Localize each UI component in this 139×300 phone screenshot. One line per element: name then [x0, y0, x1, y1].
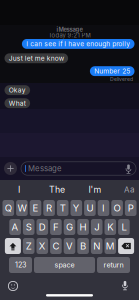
- staticText: Y: [73, 202, 80, 214]
- button[interactable]: S: [23, 219, 34, 235]
- staticText: space: [54, 261, 74, 269]
- staticText: I'm: [88, 184, 101, 195]
- button[interactable]: V: [64, 238, 75, 254]
- button[interactable]: H: [77, 219, 89, 235]
- staticText: O: [114, 202, 121, 214]
- button[interactable]: Y: [70, 200, 82, 216]
- button[interactable]: K: [104, 219, 116, 235]
- button[interactable]: Add attachment: [4, 162, 17, 175]
- staticText: R: [46, 202, 52, 214]
- staticText: The: [49, 184, 65, 195]
- button[interactable]: E: [30, 200, 41, 216]
- staticText: K: [107, 221, 113, 233]
- button[interactable]: J: [91, 219, 102, 235]
- button[interactable]: B: [77, 238, 89, 254]
- staticText: C: [52, 240, 59, 252]
- staticText: B: [80, 240, 86, 252]
- staticText: J: [94, 221, 99, 233]
- button[interactable]: I'm: [76, 181, 114, 198]
- staticText: L: [121, 221, 126, 233]
- staticText: Just let me know: [9, 54, 64, 62]
- button[interactable]: L: [118, 219, 130, 235]
- button[interactable]: N: [91, 238, 102, 254]
- staticText: S: [26, 221, 32, 233]
- staticText: H: [80, 221, 87, 233]
- button[interactable]: R: [43, 200, 55, 216]
- staticText: F: [53, 221, 59, 233]
- button[interactable]: T: [57, 200, 68, 216]
- staticText: G: [66, 221, 73, 233]
- staticText: I: [18, 184, 20, 195]
- staticText: 123: [15, 261, 26, 269]
- staticText: Number 25: [94, 67, 130, 75]
- staticText: iMessage: [56, 26, 82, 33]
- staticText: P: [128, 202, 134, 214]
- button[interactable]: W: [16, 200, 28, 216]
- staticText: M: [106, 240, 115, 252]
- staticText: Today 9:21 PM: [48, 32, 90, 39]
- staticText: Aa: [124, 185, 134, 194]
- button[interactable]: Z: [23, 238, 34, 254]
- staticText: I can see if I have enough prolly: [26, 40, 130, 48]
- button[interactable]: X: [36, 238, 48, 254]
- button[interactable]: P: [125, 200, 136, 216]
- button[interactable]: U: [84, 200, 96, 216]
- staticText: E: [32, 202, 38, 214]
- button[interactable]: Q: [2, 200, 14, 216]
- button[interactable]: The: [38, 181, 76, 198]
- button[interactable]: O: [111, 200, 123, 216]
- staticText: V: [66, 240, 73, 252]
- button[interactable]: Dictation: [116, 277, 134, 295]
- staticText: X: [39, 240, 46, 252]
- button[interactable]: 123: [9, 257, 32, 273]
- staticText: A: [12, 221, 19, 233]
- button[interactable]: space: [34, 257, 95, 273]
- staticText: What: [9, 99, 26, 107]
- button[interactable]: Text formatting options: [119, 181, 139, 198]
- button[interactable]: Delete: [118, 238, 134, 254]
- button[interactable]: G: [64, 219, 75, 235]
- button[interactable]: I: [0, 181, 38, 198]
- staticText: Okay: [9, 86, 26, 94]
- button[interactable]: C: [50, 238, 62, 254]
- button[interactable]: Message: [21, 162, 136, 175]
- staticText: W: [17, 202, 26, 214]
- button[interactable]: M: [104, 238, 116, 254]
- staticText: Z: [26, 240, 32, 252]
- staticText: Q: [5, 202, 12, 214]
- staticText: Message: [28, 164, 62, 173]
- button[interactable]: F: [50, 219, 62, 235]
- button[interactable]: I: [98, 200, 109, 216]
- button[interactable]: D: [36, 219, 48, 235]
- staticText: return: [103, 261, 123, 269]
- button[interactable]: Shift: [5, 238, 21, 254]
- staticText: N: [93, 240, 100, 252]
- staticText: D: [39, 221, 46, 233]
- staticText: I: [102, 202, 105, 214]
- staticText: Delivered: [110, 76, 133, 82]
- button[interactable]: Emoji keyboard: [4, 277, 22, 295]
- staticText: T: [60, 202, 66, 214]
- button[interactable]: A: [9, 219, 21, 235]
- button[interactable]: return: [97, 257, 130, 273]
- staticText: U: [86, 202, 93, 214]
